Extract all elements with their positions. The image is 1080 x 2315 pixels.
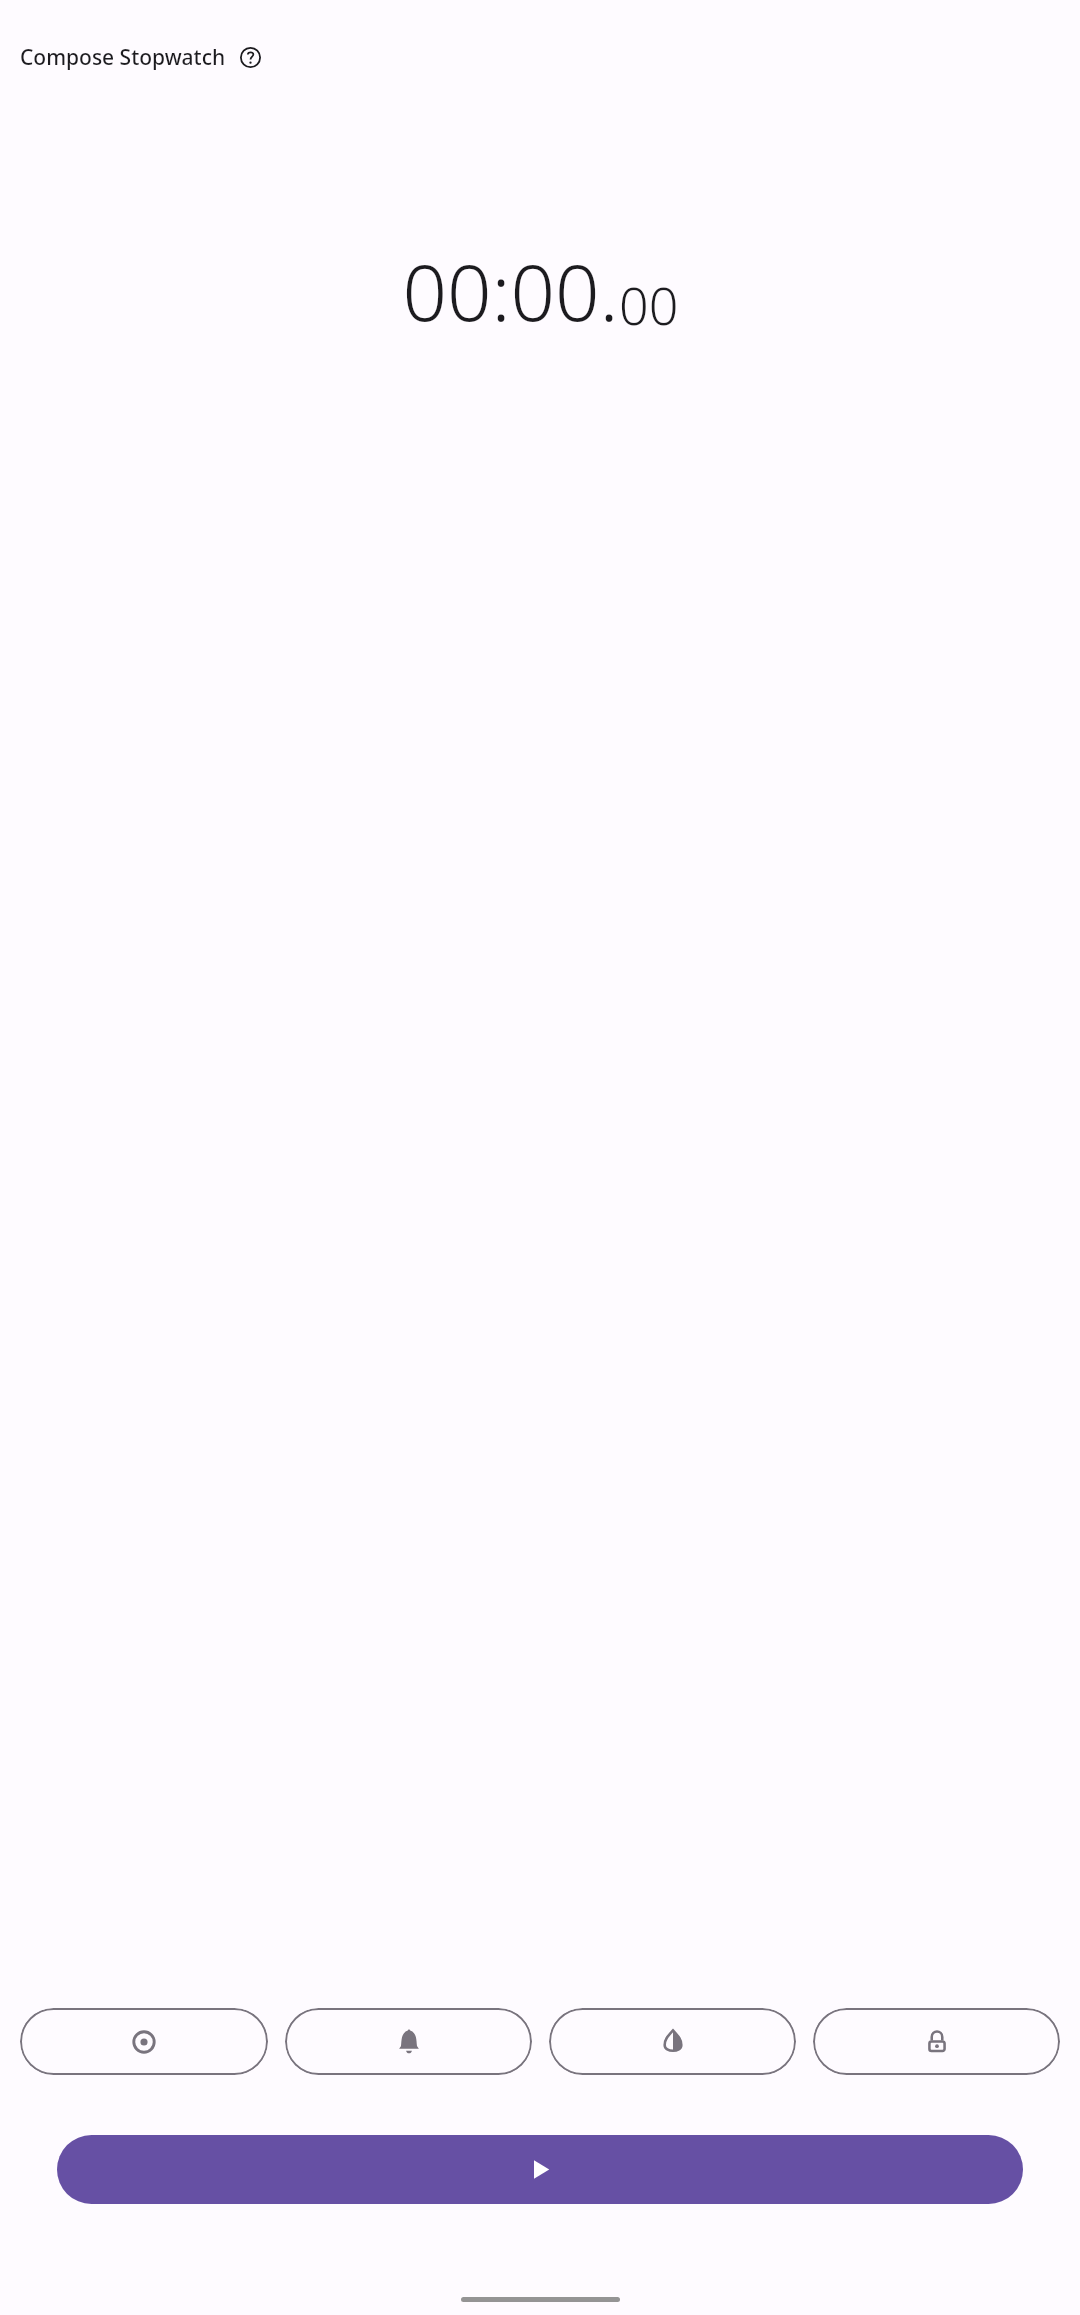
button[interactable]: Theme bbox=[549, 2008, 796, 2075]
button[interactable]: Lap bbox=[20, 2008, 268, 2075]
button[interactable]: Help bbox=[233, 40, 267, 74]
button[interactable]: Start bbox=[57, 2135, 1023, 2204]
staticText: Compose Stopwatch bbox=[20, 43, 226, 72]
button[interactable]: Alarm bbox=[285, 2008, 532, 2075]
staticText: 00 bbox=[619, 269, 679, 340]
button[interactable]: Lock bbox=[813, 2008, 1060, 2075]
staticText: 00:00. bbox=[402, 238, 619, 344]
